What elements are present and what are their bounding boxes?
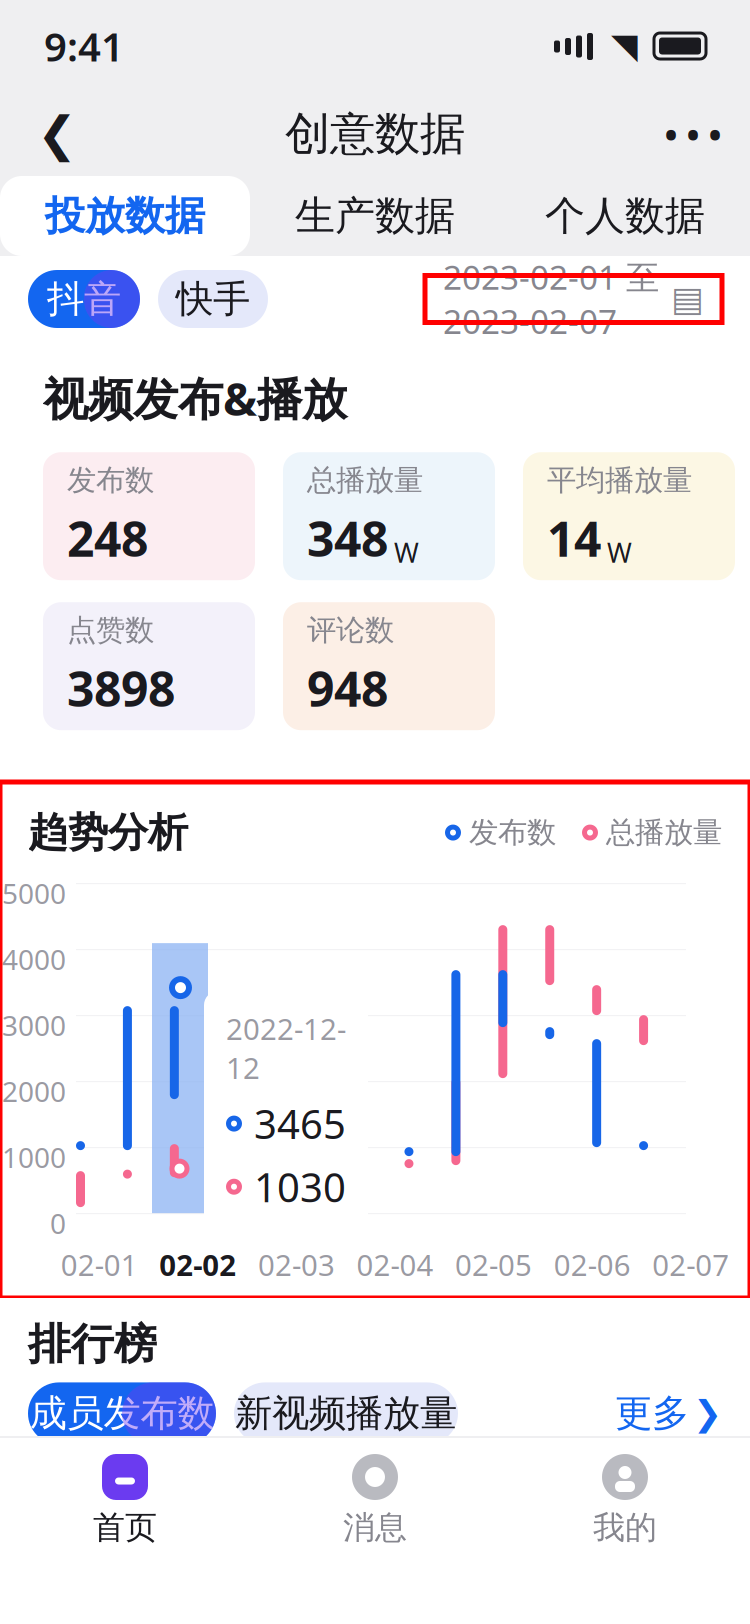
staticText: ❮ <box>37 107 77 161</box>
staticText: 新视频播放量 <box>235 1390 457 1436</box>
staticText: 348 <box>307 506 388 570</box>
staticText: 02-05 <box>455 1245 532 1284</box>
staticText: 趋势分析 <box>28 808 188 857</box>
staticText: 3465 <box>254 1097 346 1150</box>
staticText: 点赞数 <box>67 612 154 648</box>
button[interactable]: 我的 <box>500 1454 750 1547</box>
staticText: 4000 <box>2 940 66 978</box>
staticText: 创意数据 <box>285 106 465 162</box>
button[interactable]: 抖音 <box>28 270 140 328</box>
button[interactable]: 投放数据 <box>0 176 250 256</box>
button[interactable]: 新视频播放量 <box>234 1382 458 1444</box>
button[interactable]: 生产数据 <box>250 176 500 256</box>
staticText: 14 <box>547 506 601 570</box>
staticText: 更多 <box>615 1390 689 1436</box>
staticText: 248 <box>67 506 148 570</box>
staticText: 9:41 <box>44 19 124 72</box>
staticText: 1000 <box>2 1138 66 1176</box>
staticText: 02-04 <box>356 1245 433 1284</box>
button[interactable]: 消息 <box>250 1454 500 1547</box>
button[interactable]: 返回 <box>22 99 92 169</box>
staticText: 02-01 <box>61 1245 138 1284</box>
staticText: 5000 <box>2 874 66 912</box>
button[interactable]: 成员发布数 <box>28 1382 216 1444</box>
staticText: 02-02 <box>159 1245 236 1284</box>
staticText: W <box>394 535 419 570</box>
button[interactable]: 个人数据 <box>500 176 750 256</box>
staticText: 视频发布&播放 <box>43 368 347 428</box>
staticText: 生产数据 <box>295 191 455 240</box>
staticText: 评论数 <box>307 612 394 648</box>
staticText: 发布数 <box>67 462 154 498</box>
button[interactable]: 点赞数 <box>43 602 255 730</box>
staticText: 02-03 <box>258 1245 335 1284</box>
staticText: 2023-02-01 至 2023-02-07 <box>443 255 659 343</box>
staticText: 排行榜 <box>28 1318 157 1370</box>
staticText: 投放数据 <box>45 191 205 240</box>
staticText: 0 <box>50 1204 66 1242</box>
staticText: 个人数据 <box>545 191 705 240</box>
staticText: W <box>607 535 632 570</box>
button[interactable]: 首页 <box>0 1454 250 1547</box>
staticText: 成员发布数 <box>29 1390 214 1436</box>
staticText: 平均播放量 <box>547 462 692 498</box>
button[interactable]: 评论数 <box>283 602 495 730</box>
button[interactable]: 2023-02-01 至 2023-02-07 <box>425 275 722 322</box>
staticText: ❯ <box>693 1394 722 1433</box>
staticText: ▤ <box>671 279 704 319</box>
staticText: 发布数 <box>469 815 556 851</box>
staticText: 02-07 <box>652 1245 729 1284</box>
staticText: 02-06 <box>554 1245 631 1284</box>
staticText: 1030 <box>254 1160 346 1213</box>
staticText: 948 <box>307 656 388 720</box>
button[interactable]: 总播放量 <box>283 452 495 580</box>
staticText: 3000 <box>2 1006 66 1044</box>
staticText: ◥ <box>611 26 638 66</box>
staticText: 2000 <box>2 1072 66 1110</box>
button[interactable]: 发布数 <box>43 452 255 580</box>
button[interactable]: 平均播放量 <box>523 452 735 580</box>
staticText: • • • <box>664 111 721 157</box>
staticText: 我的 <box>593 1508 657 1547</box>
staticText: 首页 <box>93 1508 157 1547</box>
staticText: 3898 <box>67 656 175 720</box>
staticText: 消息 <box>343 1508 407 1547</box>
staticText: 总播放量 <box>307 462 423 498</box>
button[interactable]: 更多 <box>615 1382 722 1444</box>
button[interactable]: 快手 <box>158 270 268 328</box>
button[interactable]: 更多选项 <box>658 99 728 169</box>
staticText: 2022-12-12 <box>226 1009 346 1087</box>
staticText: 快手 <box>176 276 250 322</box>
staticText: 抖音 <box>47 276 121 322</box>
staticText: 总播放量 <box>606 815 722 851</box>
